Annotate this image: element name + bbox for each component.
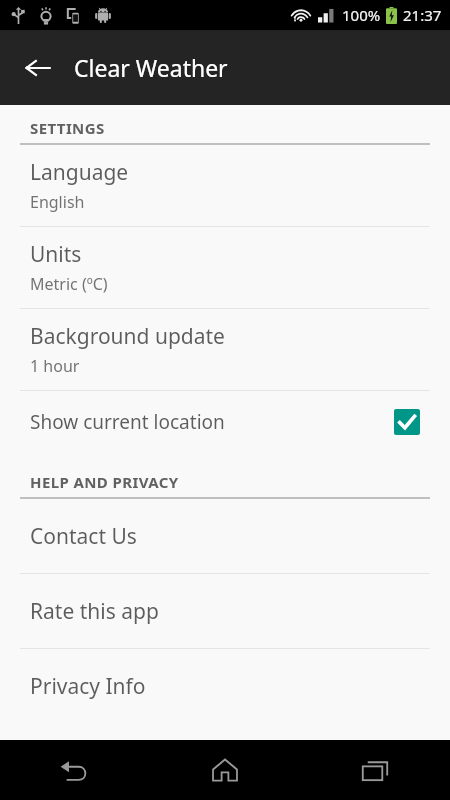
staticText: HELP AND PRIVACY — [30, 472, 179, 492]
button[interactable]: Contact Us — [0, 499, 450, 573]
button[interactable]: Rate this app — [0, 574, 450, 648]
staticText: Privacy Info — [30, 672, 146, 701]
staticText: English — [30, 191, 85, 213]
staticText: SETTINGS — [30, 118, 105, 138]
staticText: Rate this app — [30, 597, 159, 626]
button[interactable]: Show current location — [0, 391, 450, 453]
staticText: Background update — [30, 322, 225, 351]
staticText: Language — [30, 158, 129, 187]
button[interactable]: Background update — [0, 309, 450, 390]
staticText: Units — [30, 240, 82, 269]
button[interactable]: Language — [0, 145, 450, 226]
staticText: 1 hour — [30, 355, 80, 377]
staticText: 100% — [342, 5, 381, 25]
button[interactable]: Units — [0, 227, 450, 308]
button[interactable]: Recent apps — [300, 740, 450, 800]
button[interactable]: Navigate up — [12, 42, 64, 94]
button[interactable]: Back — [0, 740, 150, 800]
staticText: Show current location — [30, 409, 394, 435]
button[interactable]: Home — [150, 740, 300, 800]
button[interactable]: Privacy Info — [0, 649, 450, 723]
staticText: Contact Us — [30, 522, 137, 551]
staticText: 21:37 — [403, 5, 442, 25]
staticText: Clear Weather — [74, 52, 228, 83]
staticText: Metric (ºC) — [30, 273, 108, 295]
